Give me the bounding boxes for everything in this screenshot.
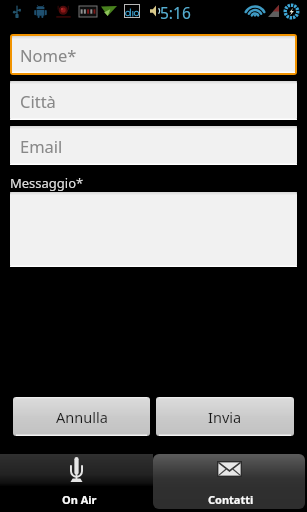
other: On Air: [70, 457, 83, 482]
other: Contatti: [217, 461, 242, 477]
button[interactable]: Email: [10, 126, 297, 165]
staticText: On Air: [62, 492, 97, 507]
staticText: Invia: [208, 407, 242, 427]
button[interactable]: On Air: [0, 454, 153, 512]
button[interactable]: Invia: [156, 397, 294, 436]
staticText: Annulla: [56, 407, 108, 427]
staticText: Nome*: [20, 44, 77, 66]
button[interactable]: Annulla: [13, 397, 150, 436]
staticText: Email: [20, 135, 63, 157]
button[interactable]: Città: [10, 81, 297, 120]
staticText: Contatti: [208, 492, 254, 507]
staticText: 5:16: [160, 2, 191, 23]
button[interactable]: [10, 192, 297, 267]
button[interactable]: Contatti: [153, 454, 305, 509]
staticText: Messaggio*: [10, 174, 84, 192]
button[interactable]: Nome*: [12, 36, 295, 73]
staticText: Città: [20, 90, 56, 112]
